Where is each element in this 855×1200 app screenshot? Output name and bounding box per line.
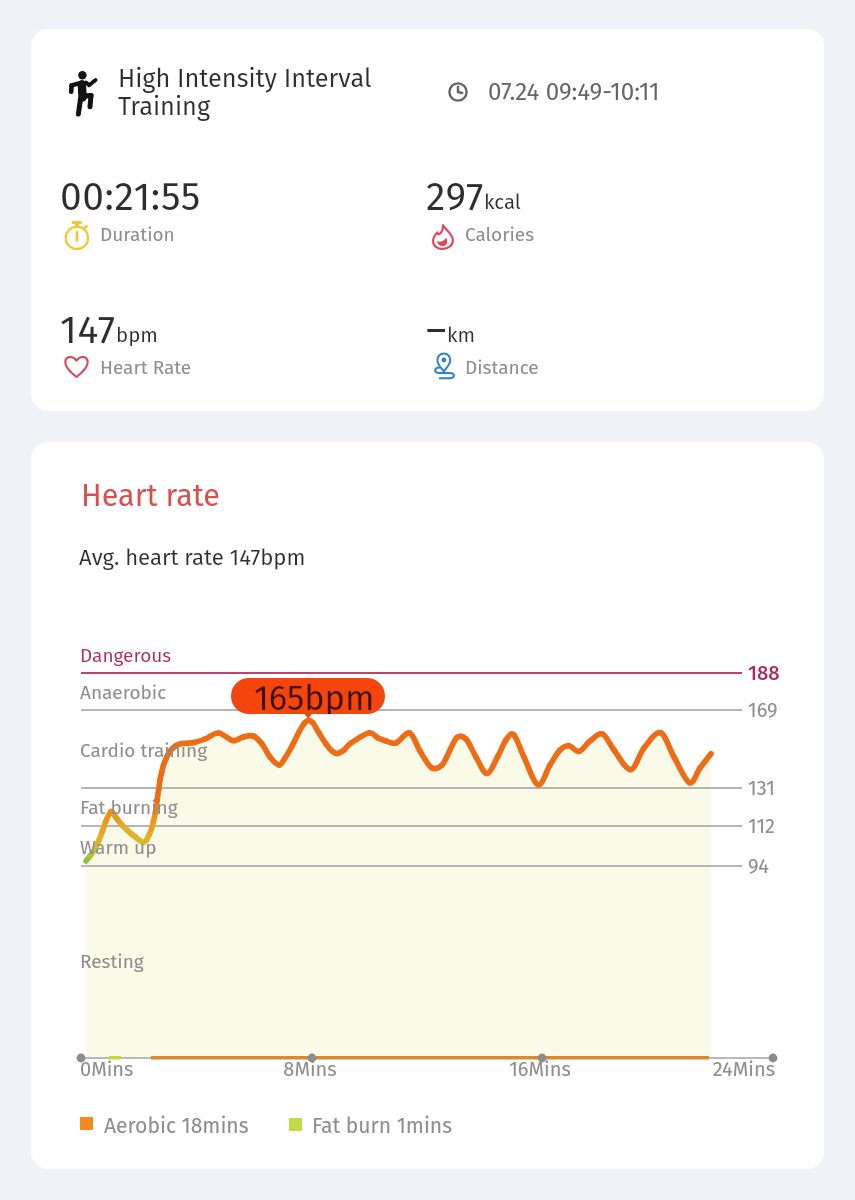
staticText: Avg. heart rate 147bpm — [79, 544, 306, 571]
staticText: Heart rate — [81, 477, 220, 514]
staticText: 112 — [748, 814, 775, 838]
staticText: kcal — [484, 190, 521, 215]
staticText: Aerobic 18mins — [104, 1113, 249, 1138]
button[interactable]: High Intensity Interval Training — [31, 29, 824, 411]
staticText: Cardio training — [80, 739, 208, 762]
staticText: Fat burning — [80, 796, 178, 819]
staticText: Resting — [80, 950, 144, 973]
staticText: 165bpm — [254, 678, 375, 714]
staticText: Heart Rate — [100, 356, 192, 379]
staticText: 0Mins — [80, 1057, 176, 1081]
staticText: Distance — [465, 356, 539, 379]
staticText: 169 — [748, 698, 778, 722]
staticText: 24Mins — [679, 1057, 775, 1081]
staticText: 8Mins — [262, 1057, 358, 1081]
staticText: 16Mins — [492, 1057, 588, 1081]
other: Running workout — [70, 71, 96, 115]
staticText: Anaerobic — [80, 681, 167, 704]
other: Time — [448, 82, 468, 102]
staticText: 188 — [748, 661, 780, 685]
staticText: Warm up — [80, 836, 157, 859]
staticText: Fat burn 1mins — [312, 1113, 453, 1138]
staticText: 07.24 09:49-10:11 — [488, 77, 660, 106]
button[interactable]: 165bpm — [231, 678, 385, 714]
staticText: km — [447, 323, 476, 348]
staticText: 00:21:55 — [60, 174, 201, 221]
staticText: 297 — [426, 174, 484, 221]
staticText: 94 — [748, 854, 769, 878]
staticText: 147 — [60, 307, 116, 354]
button[interactable]: Heart rate — [31, 442, 824, 1169]
staticText: Dangerous — [80, 644, 172, 667]
staticText: High Intensity Interval Training — [118, 63, 372, 122]
staticText: Duration — [100, 223, 175, 246]
staticText: Calories — [465, 223, 535, 246]
staticText: – — [426, 307, 447, 354]
staticText: bpm — [116, 323, 158, 348]
staticText: 131 — [748, 776, 775, 800]
